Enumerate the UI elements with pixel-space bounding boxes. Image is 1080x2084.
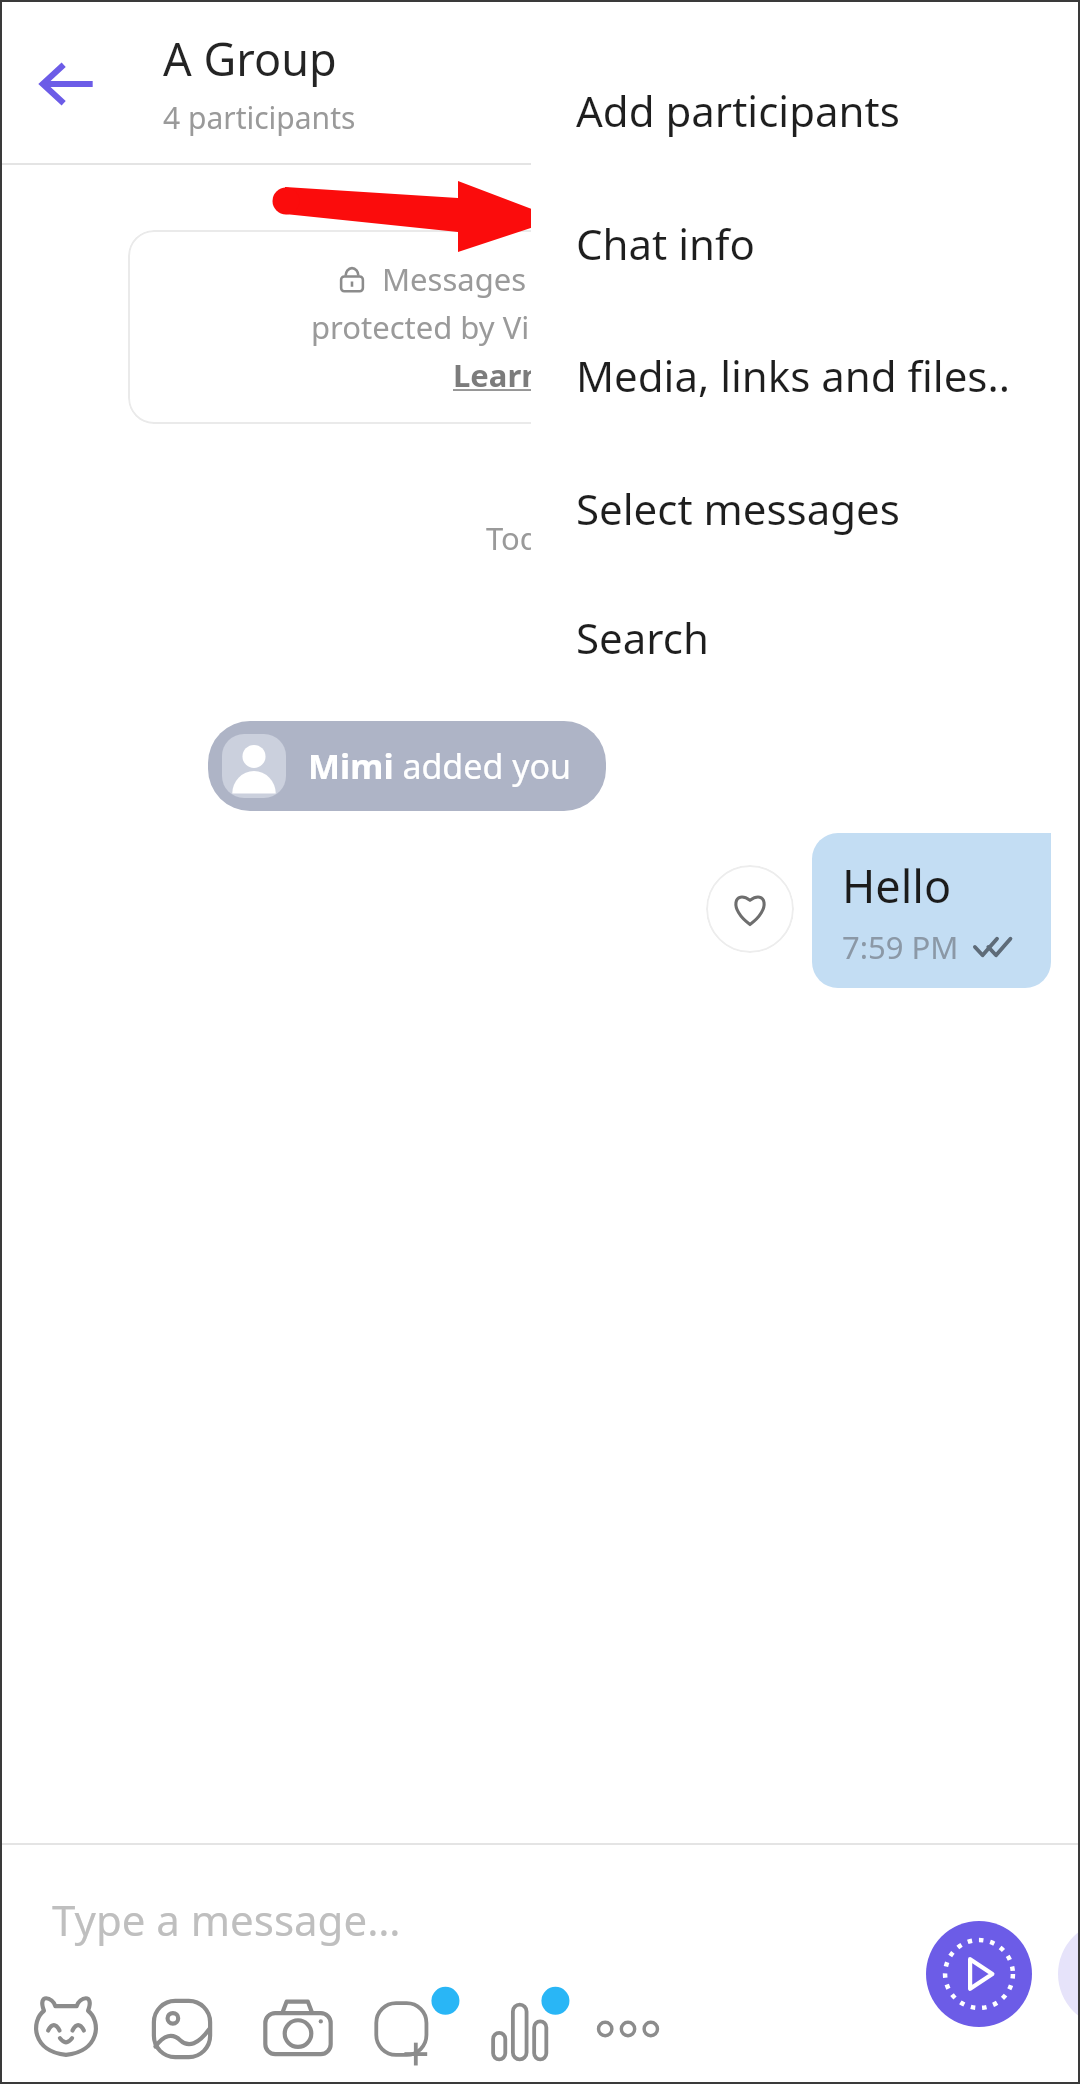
button[interactable]: Media, links and files.. [531, 327, 1080, 423]
button[interactable]: Gallery [138, 1985, 226, 2073]
button[interactable]: Voice message [478, 1985, 566, 2073]
button[interactable]: Camera [254, 1985, 342, 2073]
button[interactable]: Stickers [22, 1985, 110, 2073]
staticText: A Group [163, 28, 337, 89]
staticText: Learn more [453, 354, 631, 396]
button[interactable]: Hello [812, 833, 1051, 988]
staticText: Media, links and files.. [576, 347, 1010, 404]
button[interactable]: Select messages [531, 460, 1080, 556]
button[interactable]: Mimi added you [208, 721, 606, 811]
staticText: 7:59 PM [842, 926, 959, 968]
staticText: 4 participants [163, 97, 356, 138]
staticText: Messages in this chat are [382, 258, 749, 300]
button[interactable]: Search [531, 589, 1080, 685]
button[interactable]: Add participants [531, 62, 1080, 158]
staticText: protected by Viber's encryption. [311, 306, 774, 348]
staticText: Select messages [576, 480, 900, 537]
staticText: Chat info [576, 215, 755, 272]
staticText: Mimi added you [308, 743, 572, 789]
button[interactable]: Messages in this chat are [128, 230, 956, 424]
button[interactable]: Chat info [531, 195, 1080, 291]
button[interactable]: Send [926, 1921, 1032, 2027]
staticText: Today [486, 517, 573, 559]
staticText: Type a message… [52, 1891, 401, 1948]
button[interactable]: Back [24, 42, 108, 126]
staticText: Search [576, 609, 709, 666]
staticText: Add participants [576, 82, 900, 139]
staticText: Hello [842, 855, 952, 916]
button[interactable]: Like [706, 865, 794, 953]
button[interactable]: GIF [368, 1985, 456, 2073]
button[interactable]: More options [584, 1985, 672, 2073]
